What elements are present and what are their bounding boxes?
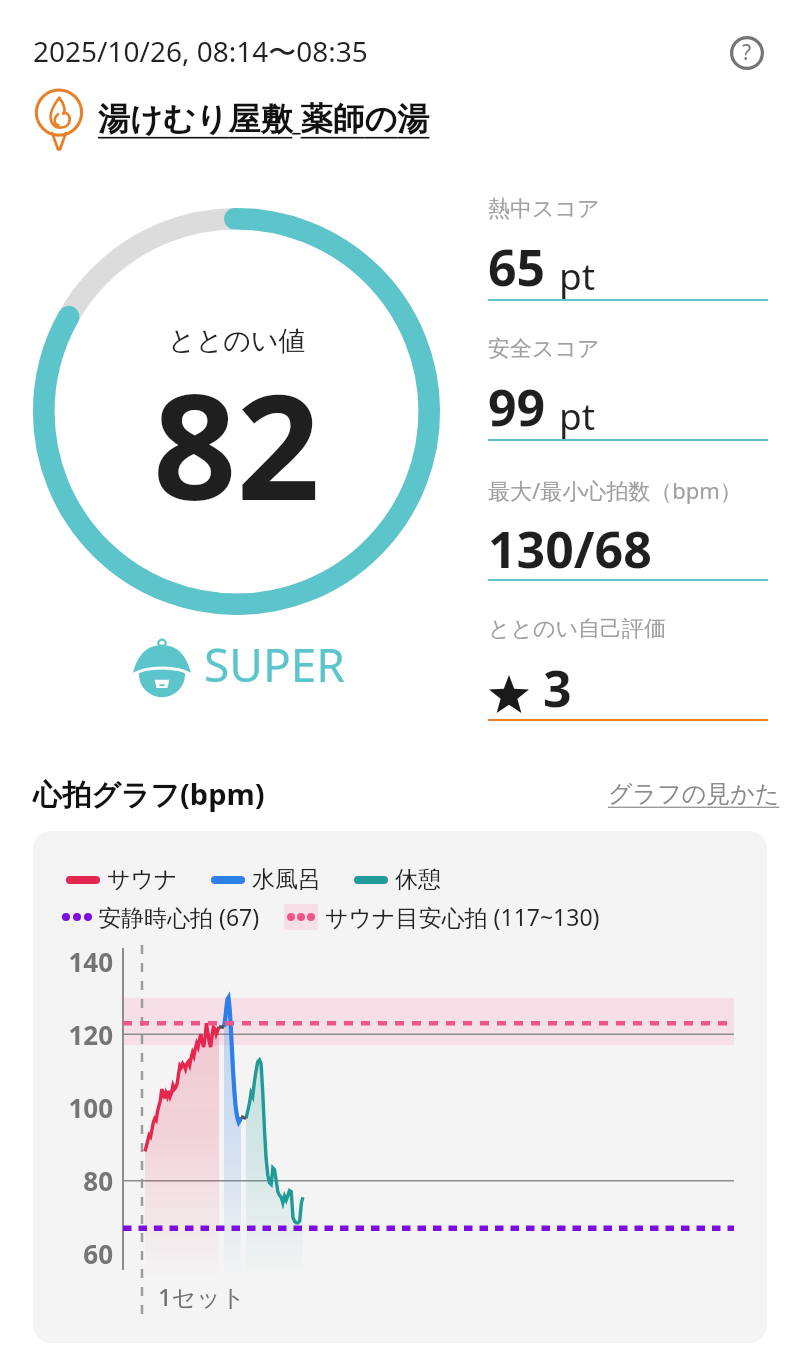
staticText: サウナ — [107, 865, 178, 894]
staticText: グラフの見かた — [608, 779, 780, 809]
staticText: pt — [559, 250, 596, 300]
staticText: 熱中スコア — [488, 195, 600, 223]
staticText: 水風呂 — [252, 865, 321, 894]
staticText: 99 — [488, 373, 546, 441]
staticText: SUPER — [204, 633, 345, 696]
staticText: 120 — [68, 1017, 113, 1052]
staticText: ととのい自己評価 — [488, 615, 667, 643]
staticText: 休憩 — [395, 865, 441, 894]
staticText: 130/68 — [488, 515, 652, 583]
button[interactable]: 湯けむり屋敷 薬師の湯 — [28, 88, 430, 140]
staticText: 2025/10/26, 08:14〜08:35 — [33, 32, 368, 70]
staticText: 82 — [153, 344, 321, 543]
staticText: 1セット — [158, 1280, 246, 1313]
staticText: 心拍グラフ(bpm) — [33, 774, 265, 814]
staticText: 100 — [68, 1090, 113, 1125]
staticText: pt — [559, 390, 596, 440]
staticText: 65 — [488, 233, 546, 301]
staticText: 140 — [68, 944, 113, 979]
staticText: 60 — [83, 1236, 113, 1271]
button[interactable]: Help — [727, 33, 767, 73]
staticText: 3 — [543, 654, 572, 722]
staticText: 湯けむり屋敷 薬師の湯 — [98, 96, 430, 140]
button[interactable]: グラフの見かた — [608, 779, 780, 809]
staticText: ? — [742, 38, 752, 67]
staticText: 80 — [83, 1163, 113, 1198]
staticText: サウナ目安心拍 (117~130) — [325, 901, 600, 932]
staticText: 最大/最小心拍数（bpm） — [488, 475, 742, 505]
staticText: 安静時心拍 (67) — [98, 901, 260, 932]
staticText: ととのい値 — [168, 324, 306, 358]
staticText: 安全スコア — [488, 335, 600, 363]
